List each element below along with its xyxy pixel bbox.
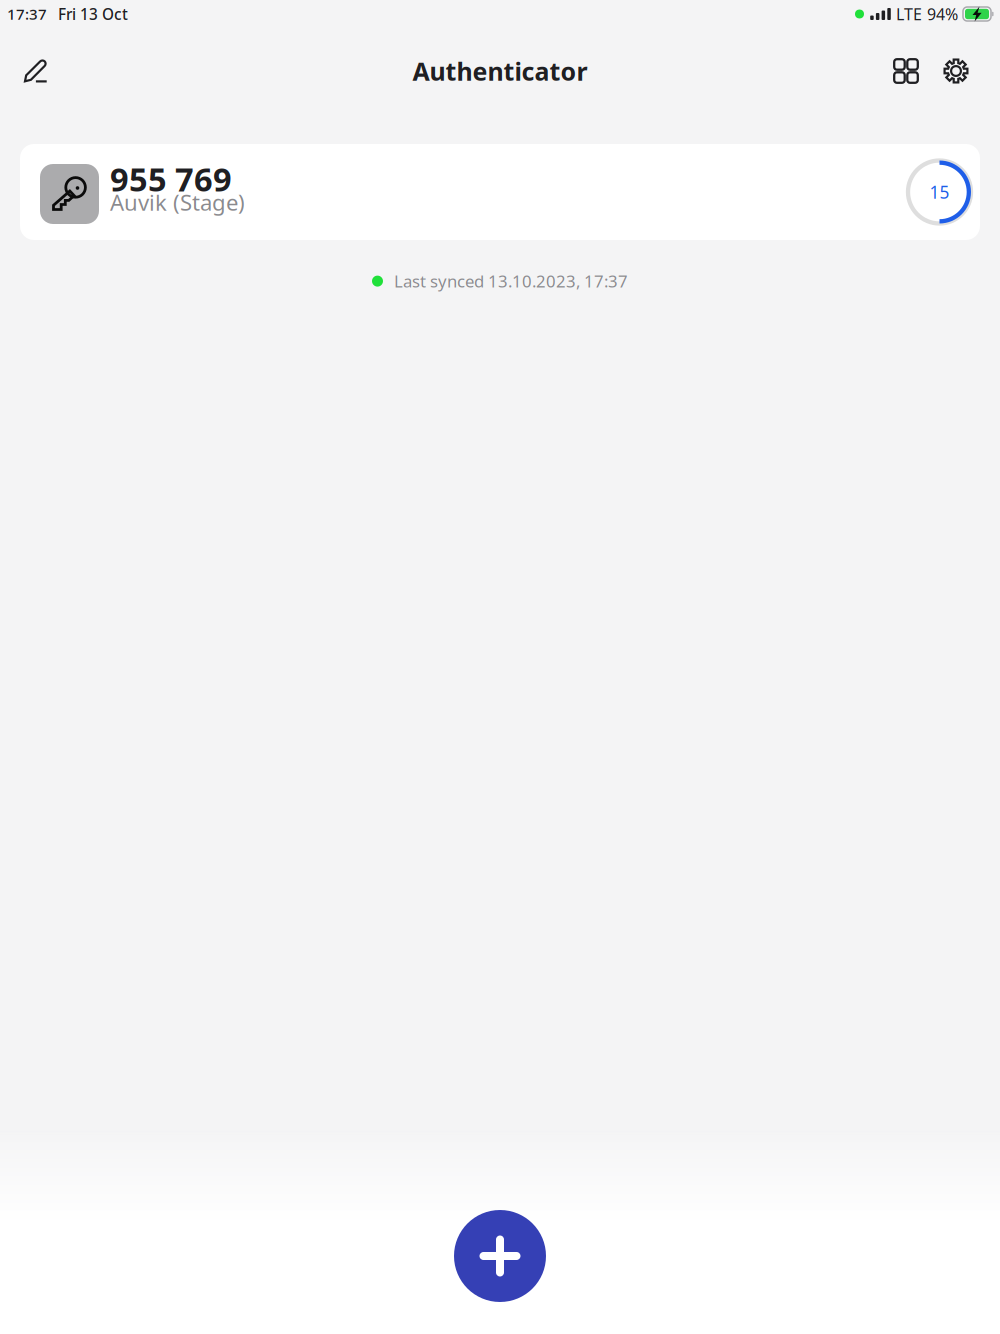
- button[interactable]: Settings: [934, 49, 978, 93]
- button[interactable]: Grid view: [884, 49, 928, 93]
- staticText: Fri 13 Oct: [58, 4, 128, 24]
- staticText: Authenticator: [412, 54, 587, 87]
- staticText: 17:37: [7, 4, 47, 24]
- staticText: 15: [929, 180, 949, 203]
- button[interactable]: 955 769: [20, 144, 980, 240]
- staticText: Last synced 13.10.2023, 17:37: [394, 270, 628, 292]
- button[interactable]: Add account: [454, 1210, 546, 1302]
- staticText: LTE: [896, 3, 922, 25]
- button[interactable]: Edit: [11, 46, 60, 95]
- staticText: Auvik (Stage): [110, 187, 245, 217]
- staticText: 955 769: [110, 157, 232, 200]
- staticText: 94%: [927, 3, 958, 25]
